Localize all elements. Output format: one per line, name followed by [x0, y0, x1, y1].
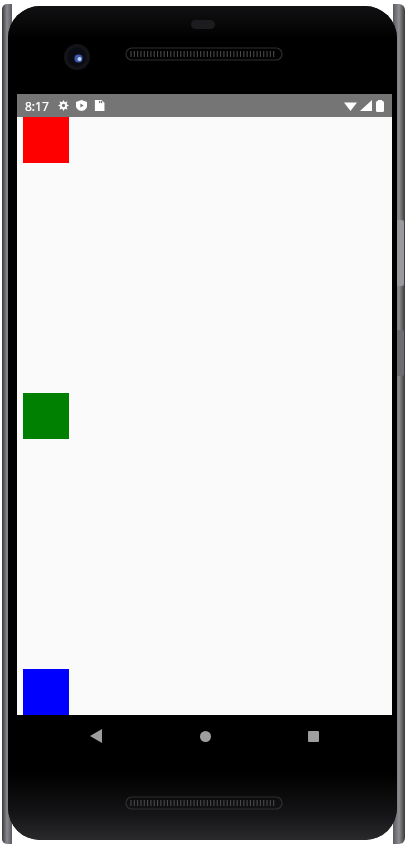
other: Power button: [395, 220, 404, 286]
button[interactable]: Recent apps: [283, 715, 343, 757]
button[interactable]: Home: [175, 715, 235, 757]
staticText: 8:17: [25, 98, 49, 114]
button[interactable]: Back: [66, 715, 126, 757]
other: Volume button: [395, 330, 404, 376]
